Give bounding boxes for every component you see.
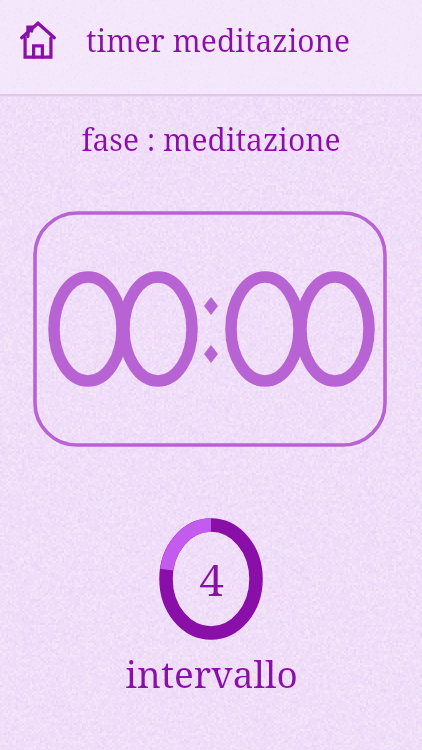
staticText: intervallo bbox=[125, 648, 298, 698]
staticText: timer meditazione bbox=[86, 20, 350, 61]
button[interactable]: Timer 00:00 bbox=[0, 211, 422, 447]
staticText: fase : meditazione bbox=[81, 119, 341, 160]
button[interactable]: Interval 4 bbox=[0, 515, 422, 643]
staticText: 4 bbox=[199, 549, 224, 609]
button[interactable]: Home bbox=[12, 14, 64, 66]
